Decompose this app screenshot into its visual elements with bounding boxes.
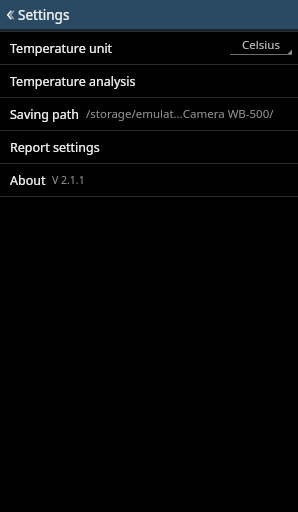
button[interactable]: Saving path	[0, 98, 298, 130]
staticText: Saving path	[10, 106, 80, 123]
staticText: Celsius	[230, 37, 292, 53]
button[interactable]: Report settings	[0, 131, 298, 163]
button[interactable]: Temperature analysis	[0, 65, 298, 97]
button[interactable]: Back	[0, 0, 78, 29]
staticText: Temperature analysis	[10, 73, 136, 90]
staticText: Report settings	[10, 139, 100, 156]
button[interactable]: About	[0, 164, 298, 196]
button[interactable]: Celsius	[230, 37, 292, 59]
staticText: About	[10, 172, 46, 189]
staticText: Temperature unit	[10, 40, 230, 57]
other: Back	[5, 8, 14, 22]
button[interactable]: Temperature unit	[0, 32, 298, 64]
staticText: /storage/emulat…Camera WB-500/	[86, 106, 274, 122]
staticText: V 2.1.1	[52, 173, 85, 187]
staticText: Settings	[18, 6, 70, 24]
